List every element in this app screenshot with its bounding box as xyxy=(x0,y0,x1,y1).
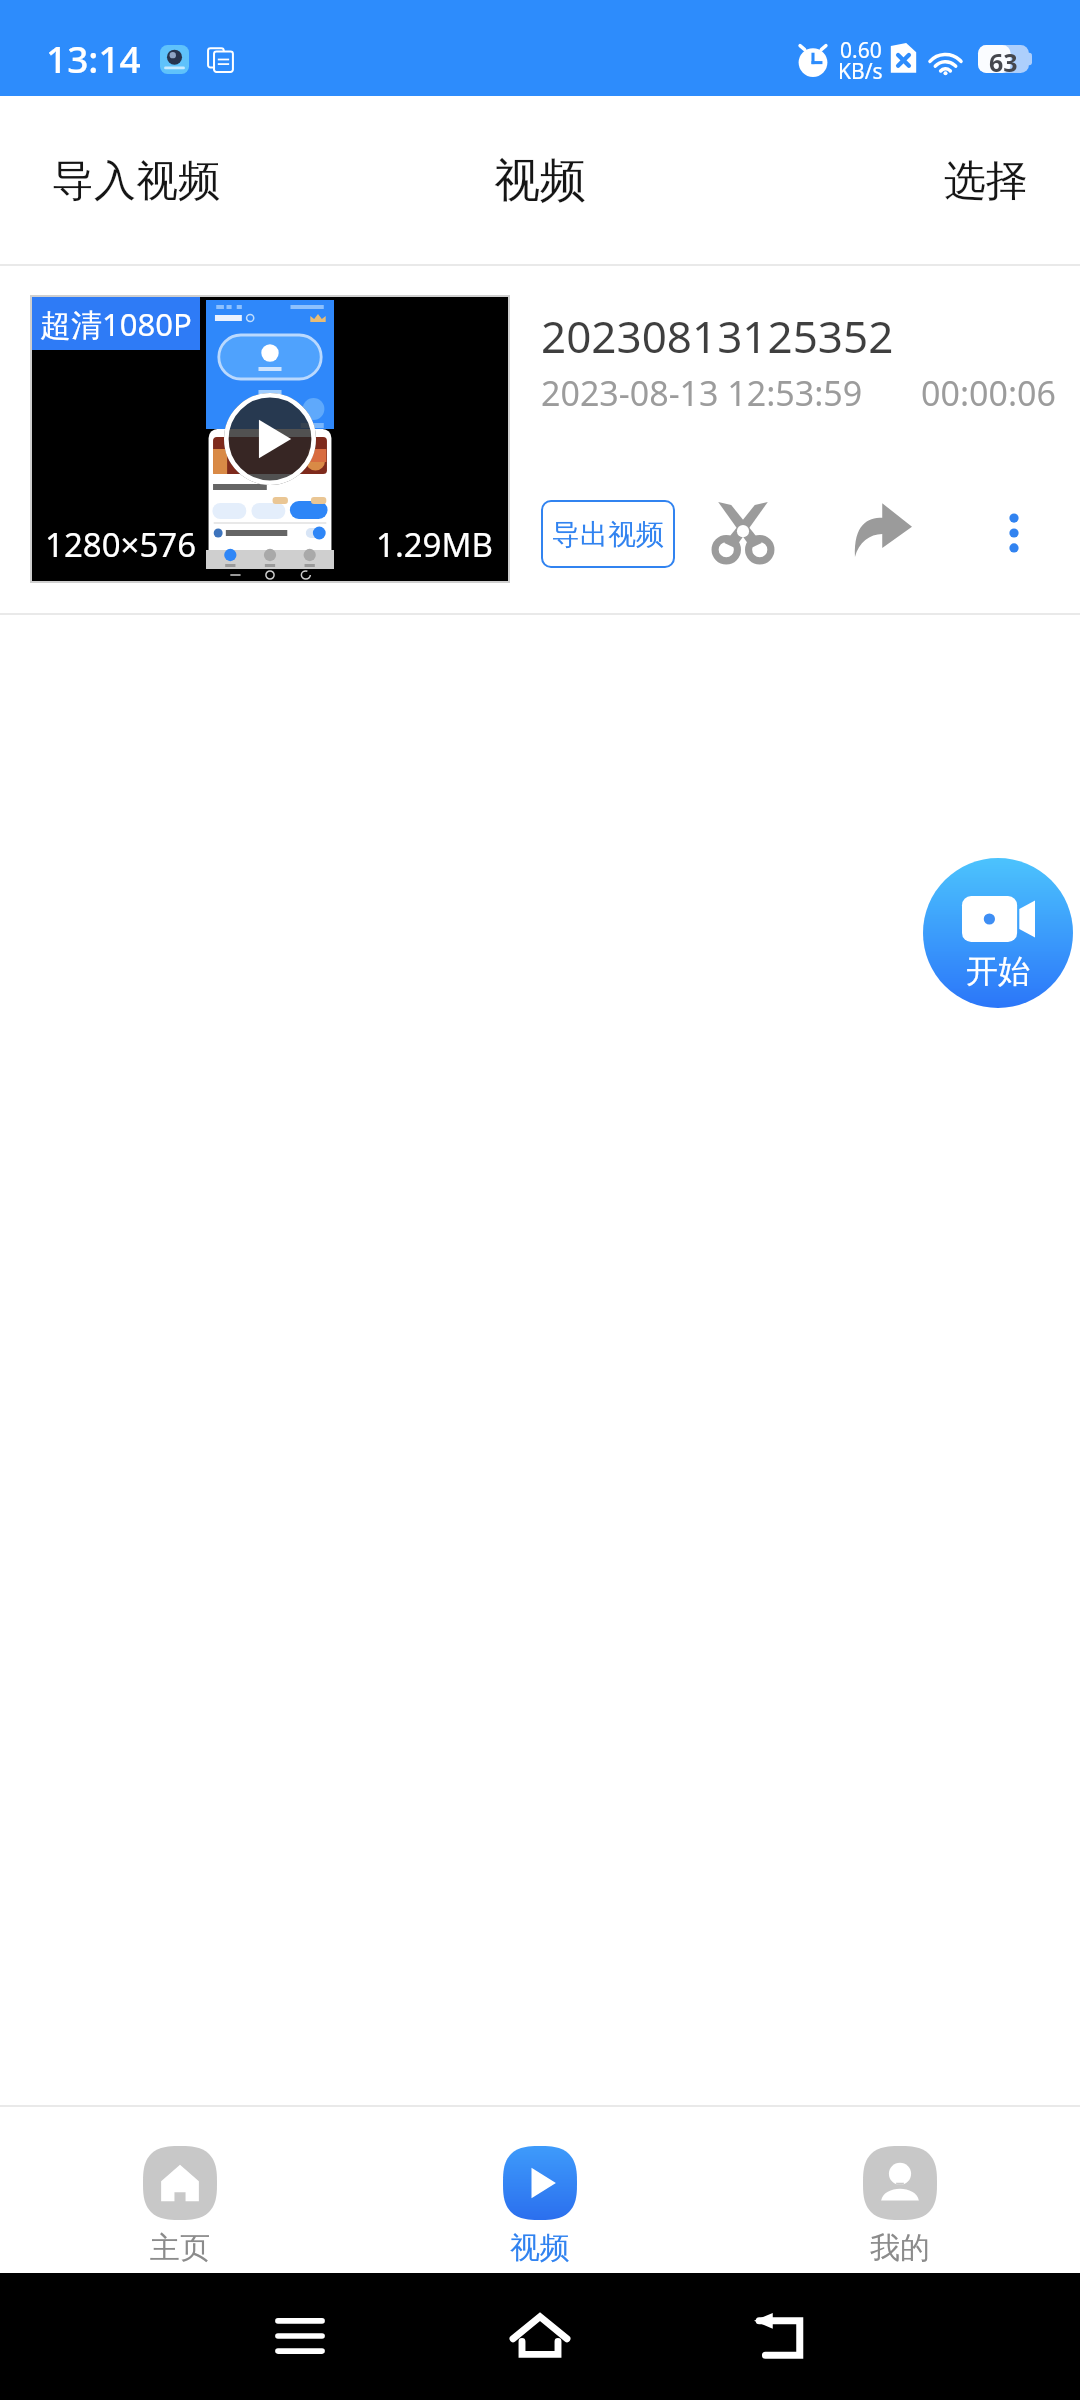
button[interactable]: Recent apps xyxy=(255,2291,345,2381)
staticText: 主页 xyxy=(150,2229,210,2267)
staticText: 超清1080P xyxy=(40,303,192,345)
staticText: KB/s xyxy=(838,57,883,86)
button[interactable]: 选择 xyxy=(892,131,1080,232)
button[interactable]: Home xyxy=(495,2291,585,2381)
staticText: 视频 xyxy=(510,2229,570,2267)
button[interactable]: Trim video xyxy=(700,490,786,576)
button[interactable]: More options xyxy=(971,490,1057,576)
staticText: 00:00:06 xyxy=(921,370,1056,416)
staticText: 开始 xyxy=(966,951,1030,991)
button[interactable]: Share video xyxy=(838,486,924,572)
staticText: 视频 xyxy=(494,152,586,210)
button[interactable]: Back xyxy=(735,2291,825,2381)
staticText: 我的 xyxy=(870,2229,930,2267)
staticText: 20230813125352 xyxy=(541,306,894,366)
button[interactable]: 导出视频 xyxy=(541,500,675,568)
staticText: 1280×576 xyxy=(45,522,197,567)
staticText: 0.60 xyxy=(840,36,882,65)
button[interactable]: 我的 xyxy=(720,2105,1080,2273)
staticText: 13:14 xyxy=(46,33,141,83)
button[interactable]: 导入视频 xyxy=(0,131,272,232)
staticText: 2023-08-13 12:53:59 xyxy=(541,370,863,416)
staticText: 导出视频 xyxy=(552,517,664,552)
button[interactable]: 超清1080P xyxy=(0,266,1080,615)
staticText: 1.29MB xyxy=(376,522,493,567)
staticText: 63 xyxy=(989,45,1018,73)
button[interactable]: 主页 xyxy=(0,2105,360,2273)
button[interactable]: 视频 xyxy=(360,2105,720,2273)
button[interactable]: 开始 xyxy=(923,858,1073,1008)
staticText: 导入视频 xyxy=(52,155,220,208)
staticText: 选择 xyxy=(944,155,1028,208)
button[interactable]: 超清1080P xyxy=(32,297,508,581)
